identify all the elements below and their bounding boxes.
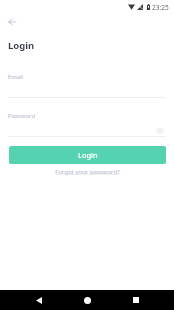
staticText: Login — [8, 39, 35, 52]
button[interactable]: Password — [9, 107, 166, 137]
button[interactable]: Show password — [154, 124, 166, 136]
button[interactable]: Back — [28, 290, 49, 310]
staticText: 23:25 — [152, 3, 169, 12]
button[interactable]: Recent apps — [125, 290, 146, 310]
staticText: Login — [78, 150, 98, 160]
button[interactable]: Email — [9, 68, 166, 98]
staticText: Forgot your password? — [55, 168, 120, 176]
button[interactable]: Back — [2, 12, 22, 32]
button[interactable]: Login — [9, 146, 166, 164]
staticText: Password — [8, 112, 36, 120]
button[interactable]: Forgot your password? — [55, 166, 120, 174]
button[interactable]: Home — [77, 290, 98, 310]
staticText: Email — [8, 73, 24, 81]
